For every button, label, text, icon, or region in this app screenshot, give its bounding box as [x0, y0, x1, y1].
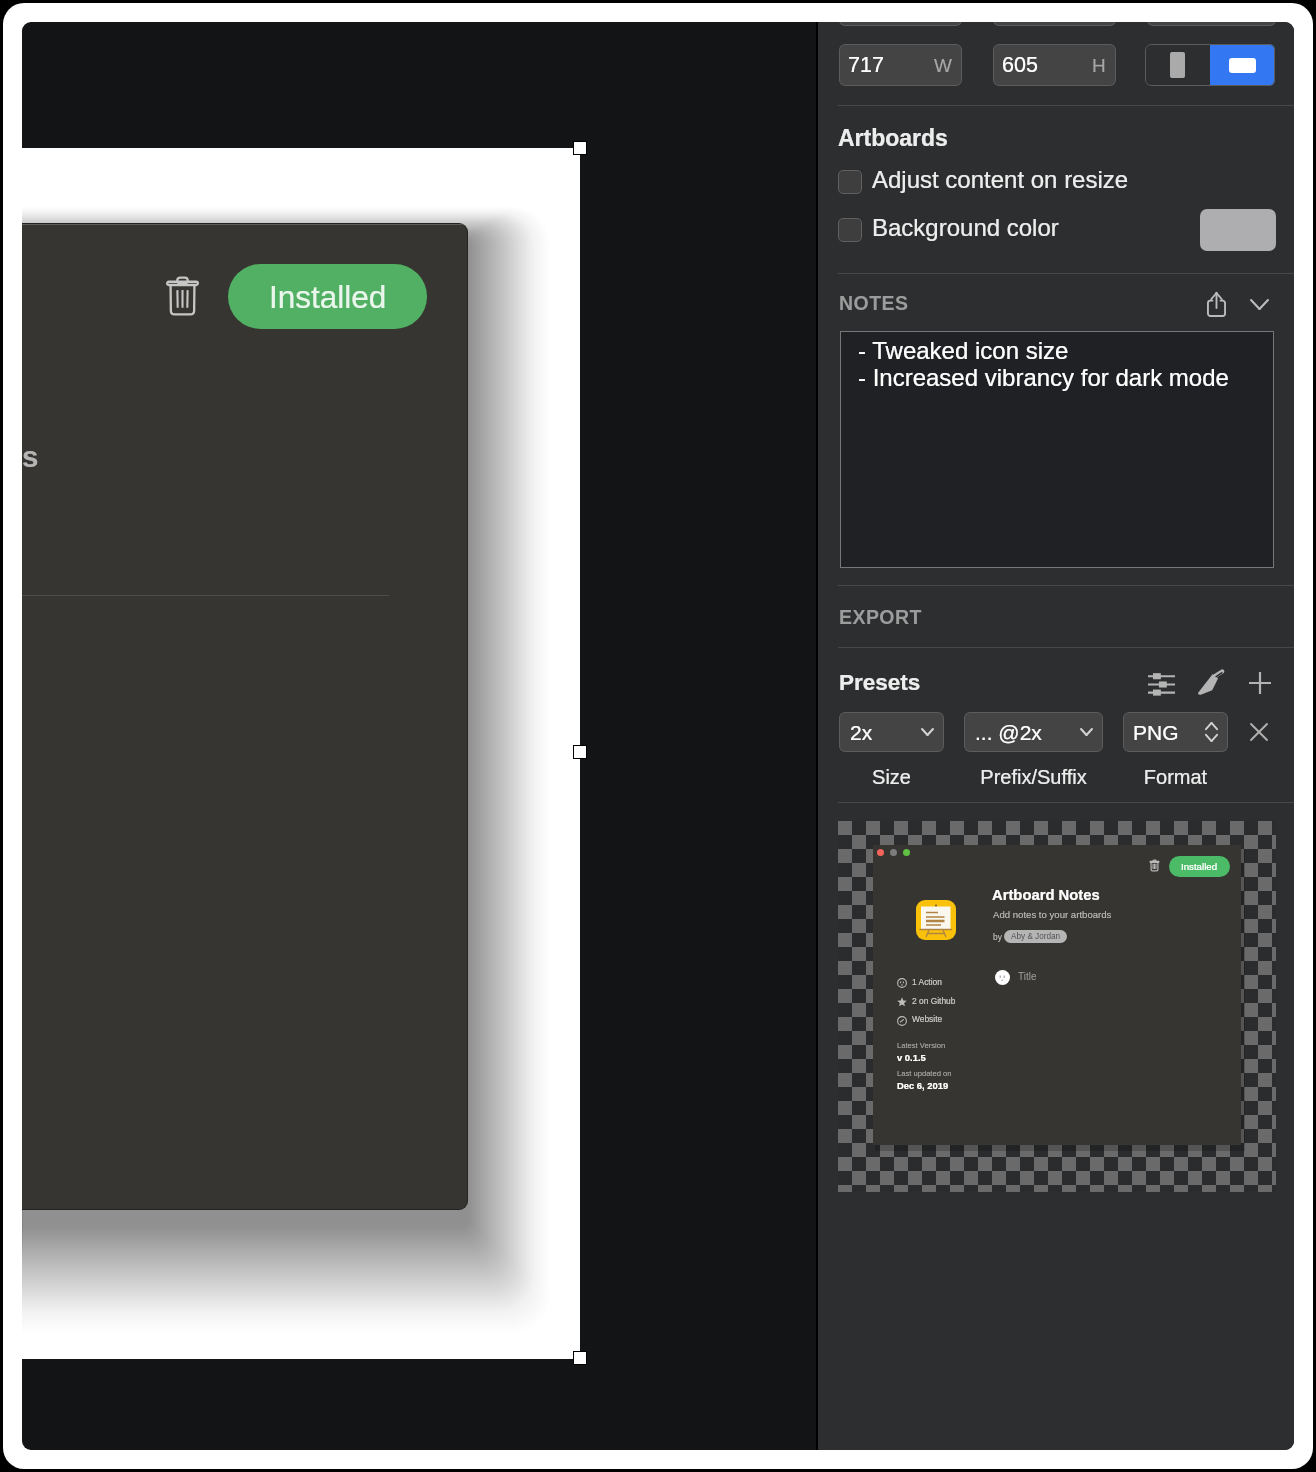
button[interactable]: PNG — [1123, 712, 1228, 752]
button[interactable]: Preset options — [1145, 668, 1177, 700]
staticText: Aby & Jordan — [1011, 932, 1061, 941]
staticText: s — [22, 440, 39, 473]
staticText: Prefix/Suffix — [964, 766, 1103, 788]
staticText: Add notes to your artboards — [993, 909, 1112, 920]
staticText: Format — [1123, 766, 1228, 788]
button[interactable]: 2x — [839, 712, 944, 752]
button[interactable]: Adjust content on resize — [818, 160, 1294, 202]
button[interactable]: Landscape orientation — [1210, 44, 1275, 86]
button[interactable]: ... @2x — [964, 712, 1103, 752]
button[interactable]: Share notes — [1200, 288, 1232, 320]
staticText: PNG — [1133, 721, 1179, 744]
button[interactable]: - Tweaked icon size — [840, 331, 1274, 568]
button[interactable]: Remove preset — [1243, 716, 1275, 748]
staticText: W — [934, 55, 952, 76]
staticText: Adjust content on resize — [872, 166, 1129, 193]
staticText: NOTES — [839, 292, 909, 314]
button[interactable]: 605 — [993, 44, 1116, 86]
button[interactable]: Add preset — [1244, 667, 1276, 699]
staticText: - Increased vibrancy for dark mode — [858, 364, 1229, 391]
staticText: by — [993, 932, 1002, 941]
staticText: 605 — [1002, 53, 1038, 77]
staticText: v 0.1.5 — [897, 1052, 926, 1063]
staticText: Last updated on — [897, 1069, 952, 1077]
staticText: Website — [912, 1014, 943, 1023]
button[interactable]: 717 — [839, 44, 962, 86]
staticText: Background color — [872, 214, 1059, 241]
staticText: Dec 6, 2019 — [897, 1080, 949, 1091]
staticText: ... @2x — [975, 721, 1042, 744]
staticText: Presets — [839, 670, 921, 695]
staticText: 2 on Github — [912, 996, 956, 1005]
staticText: Artboards — [838, 125, 948, 151]
button[interactable]: Portrait orientation — [1145, 44, 1210, 86]
staticText: 717 — [848, 53, 884, 77]
staticText: EXPORT — [839, 606, 922, 628]
staticText: Installed — [1181, 861, 1218, 872]
button[interactable]: Background color — [818, 208, 1294, 250]
staticText: - Tweaked icon size — [858, 337, 1069, 364]
staticText: Title — [1018, 971, 1037, 982]
button[interactable]: Edit preset — [1193, 667, 1225, 699]
staticText: Artboard Notes — [992, 887, 1100, 904]
staticText: H — [1092, 55, 1106, 76]
staticText: 2x — [850, 721, 873, 744]
staticText: Installed — [269, 279, 387, 314]
button[interactable]: Collapse notes — [1243, 288, 1275, 320]
staticText: 1 Action — [912, 977, 942, 986]
button[interactable]: Installed — [228, 264, 427, 329]
staticText: Size — [839, 766, 944, 788]
button[interactable]: Delete plugin — [156, 270, 208, 322]
staticText: Latest Version — [897, 1041, 946, 1049]
